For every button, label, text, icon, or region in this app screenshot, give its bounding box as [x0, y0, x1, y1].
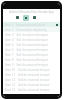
button[interactable]: Item 14 Sed do eiusmod tempor	[3, 87, 60, 92]
button[interactable]: Item 5 Sed do eiusmod tempor	[3, 42, 60, 47]
staticText: Item 7 Sed do eiusmod tempor	[5, 53, 48, 57]
button[interactable]: Item 9 Sed do eiusmod tempor	[3, 62, 60, 67]
staticText: Item 11 Sed do eiusmod tempor	[5, 73, 50, 77]
staticText: Item 9 Sed do eiusmod tempor	[5, 63, 48, 67]
button[interactable]: Item 4 Sed do eiusmod tempor	[3, 37, 60, 42]
staticText: Item 5 Sed do eiusmod tempor	[5, 43, 48, 47]
staticText: Item 4 Sed do eiusmod tempor	[5, 38, 48, 42]
button[interactable]: Item 2 Consectetur adipiscing	[3, 27, 60, 32]
button[interactable]: Item 10 Sed do eiusmod tempor	[3, 67, 60, 72]
staticText: Item 2 Consectetur adipiscing	[5, 28, 47, 32]
button[interactable]: Item 6 Sed do eiusmod tempor	[3, 47, 60, 52]
button[interactable]: Item 12 Sed do eiusmod tempor	[3, 77, 60, 82]
staticText: Item 12 Sed do eiusmod tempor	[5, 78, 50, 82]
button[interactable]: Item 1 Lorem ipsum dolor sit	[3, 22, 60, 27]
button[interactable]: Item 7 Sed do eiusmod tempor	[3, 52, 60, 57]
button[interactable]: Item 8 Sed do eiusmod tempor	[3, 57, 60, 62]
staticText: Item 1 Lorem ipsum dolor sit	[5, 23, 46, 27]
button[interactable]: Item 11 Sed do eiusmod tempor	[3, 72, 60, 77]
staticText: Item 3 Sed do eiusmod tempor	[5, 33, 48, 37]
staticText: Item 14 Sed do eiusmod tempor	[5, 88, 50, 92]
staticText: Android RecyclerView Sample App	[9, 10, 54, 14]
staticText: Item 13 Sed do eiusmod tempor	[5, 83, 50, 87]
staticText: Item 8 Sed do eiusmod tempor	[5, 58, 48, 62]
button[interactable]: Item 13 Sed do eiusmod tempor	[3, 82, 60, 87]
staticText: Item 6 Sed do eiusmod tempor	[5, 48, 48, 52]
staticText: Item 10 Sed do eiusmod tempor	[5, 68, 50, 72]
button[interactable]: Filter	[23, 15, 29, 21]
button[interactable]: Search	[33, 16, 36, 19]
button[interactable]: Item 3 Sed do eiusmod tempor	[3, 32, 60, 37]
button[interactable]: Menu	[16, 16, 19, 19]
